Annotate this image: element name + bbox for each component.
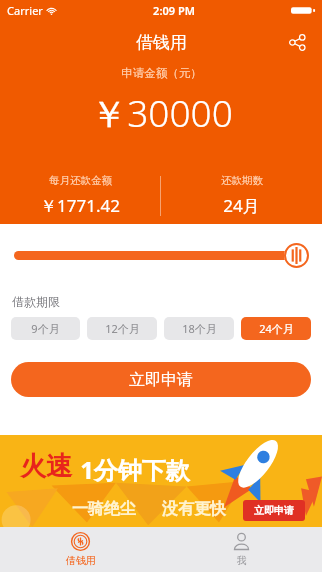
staticText: 24个月 <box>259 321 294 336</box>
button[interactable]: Loan amount slider <box>14 251 308 260</box>
staticText: 借款期限 <box>12 294 60 309</box>
button[interactable]: Promotion banner <box>0 435 322 527</box>
staticText: 我 <box>237 554 247 567</box>
staticText: ￥30000 <box>90 87 233 138</box>
button[interactable]: 24个月 <box>241 317 311 340</box>
staticText: 2:09 PM <box>153 3 195 18</box>
button[interactable]: Share <box>281 26 313 58</box>
button[interactable]: 12个月 <box>87 317 157 340</box>
button[interactable]: 立即申请 <box>11 362 311 397</box>
button[interactable]: 18个月 <box>164 317 234 340</box>
staticText: 还款期数 <box>221 174 263 187</box>
staticText: 借钱用 <box>66 554 96 567</box>
staticText: 立即申请 <box>129 370 193 390</box>
button[interactable]: Slider handle <box>283 242 310 269</box>
button[interactable]: 我 <box>161 527 322 572</box>
staticText: 立即申请 <box>254 504 294 517</box>
staticText: 18个月 <box>182 321 217 336</box>
staticText: 12个月 <box>105 321 140 336</box>
staticText: ￥1771.42 <box>40 194 120 217</box>
staticText: 一骑绝尘 <box>72 499 136 519</box>
staticText: 每月还款金额 <box>49 174 112 187</box>
staticText: 火速 <box>20 450 72 483</box>
staticText: 24月 <box>223 194 260 217</box>
button[interactable]: 借钱用 <box>0 527 161 572</box>
staticText: 申请金额（元） <box>121 66 202 80</box>
button[interactable]: 9个月 <box>11 317 80 340</box>
staticText: 1分钟下款 <box>80 453 190 486</box>
staticText: Carrier <box>7 3 43 18</box>
staticText: 没有更快 <box>162 499 226 519</box>
staticText: 9个月 <box>31 321 60 336</box>
staticText: 借钱用 <box>136 32 187 53</box>
